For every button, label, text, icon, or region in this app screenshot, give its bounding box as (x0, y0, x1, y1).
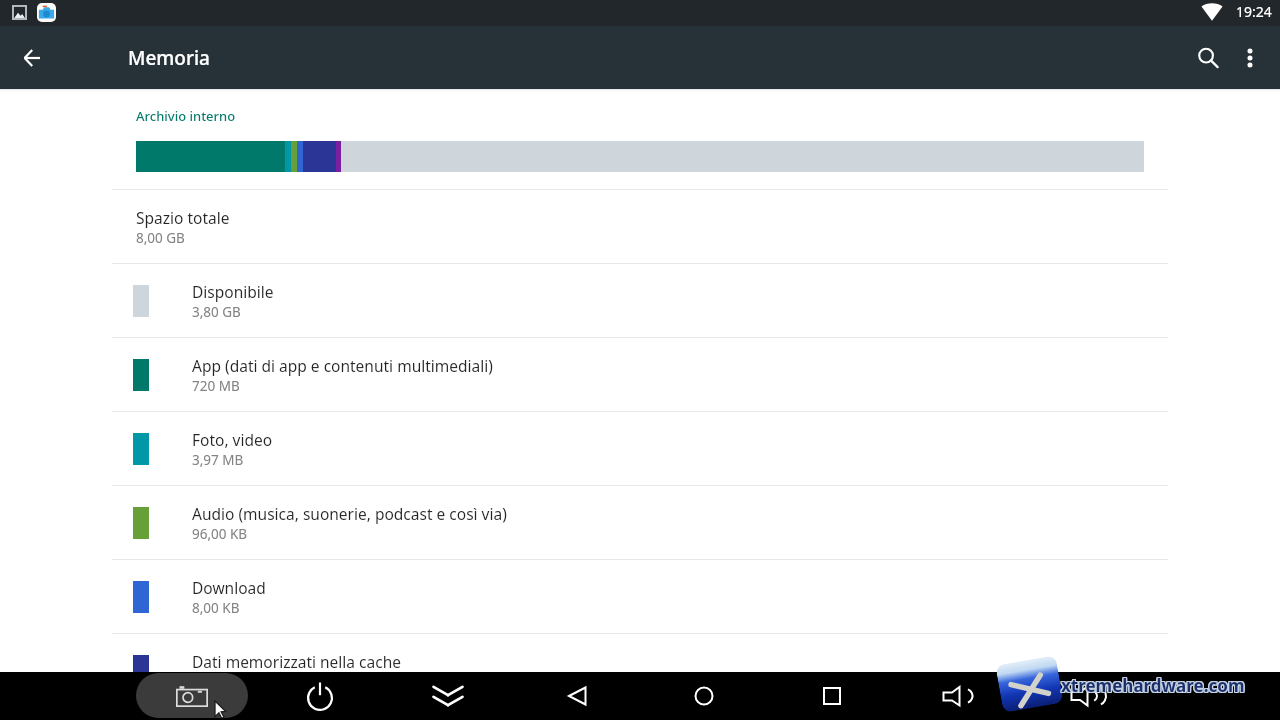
staticText: 8,00 GB (136, 229, 185, 247)
button[interactable]: Volume down (934, 672, 982, 720)
staticText: Disponibile (192, 281, 274, 302)
button[interactable]: Spazio totale (0, 190, 1280, 263)
button[interactable]: Foto, video (0, 412, 1280, 485)
staticText: Dati memorizzati nella cache (192, 651, 401, 672)
button[interactable]: Audio (musica, suonerie, podcast e così … (0, 486, 1280, 559)
staticText: App (dati di app e contenuti multimedial… (192, 355, 493, 376)
button[interactable]: Volume up (1064, 672, 1112, 720)
button[interactable]: App (dati di app e contenuti multimedial… (0, 338, 1280, 411)
button[interactable]: Recent apps (808, 672, 856, 720)
staticText: xtremehardware.com (1060, 675, 1244, 698)
staticText: Archivio interno (136, 107, 236, 125)
staticText: 19:24 (1236, 2, 1272, 21)
staticText: xtremehardware.com (1061, 673, 1245, 696)
staticText: xtremehardware.com (1062, 673, 1246, 696)
button[interactable]: Back (552, 672, 600, 720)
button[interactable]: Disponibile (0, 264, 1280, 337)
button[interactable]: Back (8, 34, 55, 81)
staticText: xtremehardware.com (1062, 674, 1246, 697)
button[interactable]: Dati memorizzati nella cache (0, 634, 1280, 707)
button[interactable]: Power (296, 672, 344, 720)
staticText: 3,80 GB (192, 303, 241, 321)
button[interactable]: Search (1184, 34, 1231, 81)
staticText: Foto, video (192, 429, 273, 450)
staticText: xtremehardware.com (1060, 674, 1244, 697)
staticText: Spazio totale (136, 207, 230, 228)
staticText: Audio (musica, suonerie, podcast e così … (192, 503, 507, 524)
staticText: Memoria (128, 45, 210, 71)
button[interactable]: Screenshot (136, 673, 248, 718)
staticText: xtremehardware.com (1062, 675, 1246, 698)
button[interactable]: Download (0, 560, 1280, 633)
button[interactable]: More options (1226, 34, 1273, 81)
staticText: 8,00 KB (192, 599, 240, 617)
staticText: 3,97 MB (192, 451, 244, 469)
staticText: 720 MB (192, 377, 240, 395)
button[interactable]: Hide navigation bar (424, 672, 472, 720)
staticText: xtremehardware.com (1060, 673, 1244, 696)
staticText: Download (192, 577, 266, 598)
staticText: 96,00 KB (192, 525, 248, 543)
staticText: xtremehardware.com (1061, 675, 1245, 698)
staticText: 16,00 KB (192, 673, 248, 691)
staticText: xtremehardware.com (1061, 674, 1245, 697)
button[interactable]: Home (680, 672, 728, 720)
